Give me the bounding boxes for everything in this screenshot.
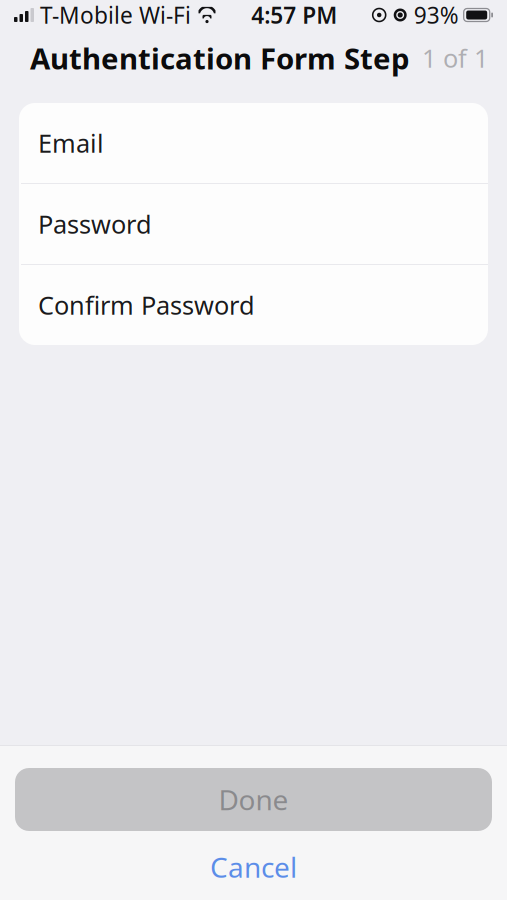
button[interactable]: Password <box>19 184 488 264</box>
button[interactable]: Confirm Password <box>19 265 488 345</box>
staticText: Done <box>218 781 288 818</box>
staticText: 1 of 1 <box>422 41 488 75</box>
staticText: Email <box>38 126 104 160</box>
staticText: Authentication Form Step <box>30 38 410 77</box>
staticText: Password <box>38 207 152 241</box>
staticText: Cancel <box>210 848 297 886</box>
button[interactable]: Email <box>19 103 488 183</box>
button[interactable]: Done <box>15 768 492 831</box>
button[interactable]: Cancel <box>0 846 507 888</box>
staticText: 4:57 PM <box>251 0 337 30</box>
staticText: Confirm Password <box>38 288 255 322</box>
staticText: T-Mobile Wi-Fi <box>40 0 191 30</box>
staticText: 93% <box>414 0 459 30</box>
